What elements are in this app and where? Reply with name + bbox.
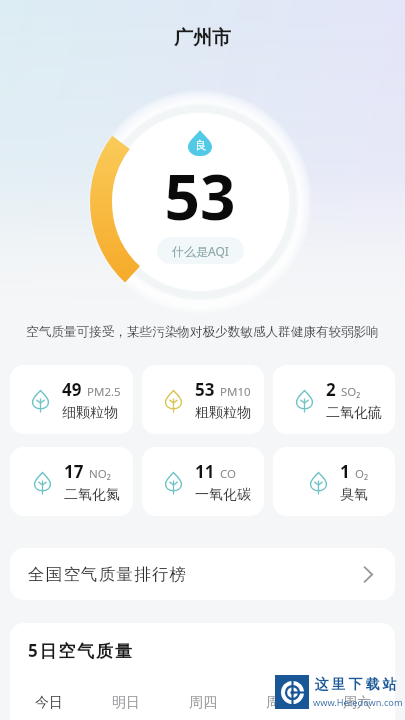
staticText: 5日空气质量 xyxy=(28,639,134,662)
staticText: PM2.5 xyxy=(87,384,121,400)
staticText: 什么是AQI xyxy=(172,243,229,259)
button[interactable]: 49 xyxy=(10,365,133,434)
staticText: 周四 xyxy=(189,694,217,712)
staticText: CO xyxy=(220,466,237,482)
staticText: 广州市 xyxy=(0,26,405,50)
button[interactable]: 17 xyxy=(10,447,133,516)
staticText: 粗颗粒物 xyxy=(195,404,251,422)
staticText: 49 xyxy=(62,378,82,401)
staticText: 17 xyxy=(64,460,84,483)
staticText: 2 xyxy=(326,378,336,401)
button[interactable]: 全国空气质量排行榜 xyxy=(10,548,395,600)
staticText: 臭氧 xyxy=(340,486,368,504)
staticText: 这里下载站 xyxy=(313,676,398,694)
staticText: 53 xyxy=(90,154,310,238)
button[interactable]: 11 xyxy=(142,447,264,516)
staticText: 1 xyxy=(340,460,350,483)
button[interactable]: 明日 xyxy=(87,688,164,718)
staticText: PM10 xyxy=(220,384,251,400)
staticText: www.Heredown.com xyxy=(313,696,403,709)
staticText: 细颗粒物 xyxy=(62,404,118,422)
staticText: O₂ xyxy=(355,466,369,482)
staticText: 一氧化碳 xyxy=(195,486,251,504)
staticText: SO₂ xyxy=(341,384,361,400)
button[interactable]: 周五 xyxy=(241,688,318,718)
staticText: 53 xyxy=(195,378,215,401)
staticText: 空气质量可接受，某些污染物对极少数敏感人群健康有较弱影响 xyxy=(0,324,405,340)
staticText: 周五 xyxy=(266,694,294,712)
button[interactable]: 什么是AQI xyxy=(157,237,244,264)
staticText: 今日 xyxy=(35,694,63,712)
button[interactable]: 1 xyxy=(273,447,395,516)
button[interactable]: 2 xyxy=(273,365,395,434)
staticText: NO₂ xyxy=(89,466,111,482)
staticText: 良 xyxy=(195,138,206,152)
button[interactable]: 今日 xyxy=(10,688,87,718)
staticText: 二氧化氮 xyxy=(64,486,120,504)
button[interactable]: 53 xyxy=(142,365,264,434)
button[interactable]: 周六 xyxy=(318,688,395,718)
staticText: 周六 xyxy=(343,694,371,712)
staticText: 二氧化硫 xyxy=(326,404,382,422)
staticText: 全国空气质量排行榜 xyxy=(28,564,188,585)
button[interactable]: 周四 xyxy=(164,688,241,718)
staticText: 11 xyxy=(195,460,215,483)
staticText: 明日 xyxy=(112,694,140,712)
